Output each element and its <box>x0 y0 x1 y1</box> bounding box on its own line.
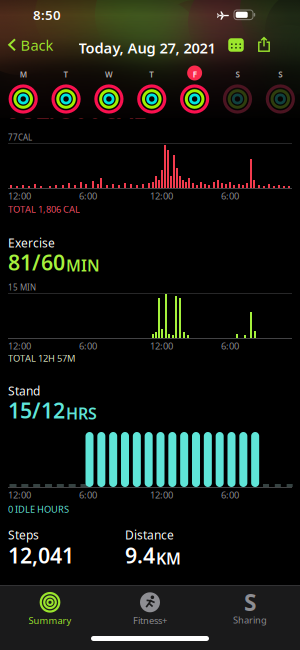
staticText: Back <box>20 35 53 55</box>
staticText: Stand <box>8 383 40 399</box>
staticText: TOTAL 12H 57M <box>8 352 75 364</box>
staticText: S <box>235 69 239 80</box>
staticText: 6:00 <box>79 340 97 352</box>
button[interactable]: Calendar <box>224 34 248 56</box>
staticText: 6:00 <box>79 190 97 202</box>
staticText: MIN <box>66 255 100 276</box>
staticText: 77CAL <box>8 132 32 143</box>
staticText: Sharing <box>233 614 267 626</box>
staticText: S <box>278 69 282 80</box>
staticText: 0 IDLE HOURS <box>8 503 69 515</box>
staticText: F <box>193 69 197 80</box>
staticText: 9.4 <box>125 541 155 569</box>
staticText: Distance <box>125 527 174 543</box>
staticText: Today, Aug 27, 2021 <box>78 38 215 57</box>
staticText: 12:00 <box>150 489 173 501</box>
button[interactable]: Day W <box>88 64 130 118</box>
button[interactable]: Share <box>254 33 274 56</box>
staticText: 12,041 <box>8 541 74 569</box>
staticText: 15/12 <box>8 396 65 424</box>
staticText: TOTAL 1,806 CAL <box>8 203 80 215</box>
button[interactable]: Day F <box>174 64 216 118</box>
button[interactable]: Fitness+ <box>100 590 200 628</box>
button[interactable]: Back <box>0 33 53 57</box>
staticText: 15 MIN <box>8 282 36 293</box>
button[interactable]: Day S <box>216 64 258 118</box>
staticText: 8:50 <box>33 6 61 24</box>
staticText: S <box>244 587 256 617</box>
button[interactable]: Day T <box>45 64 87 118</box>
staticText: 6:00 <box>221 340 239 352</box>
staticText: T <box>64 69 69 80</box>
button[interactable]: S <box>200 590 300 628</box>
staticText: Fitness+ <box>133 614 167 627</box>
button[interactable]: Day S <box>259 64 300 118</box>
staticText: W <box>105 69 113 80</box>
staticText: 81/60 <box>8 248 65 276</box>
staticText: KM <box>156 548 181 569</box>
staticText: 12:00 <box>150 190 173 202</box>
button[interactable]: Day M <box>2 64 44 118</box>
staticText: HRS <box>66 403 97 424</box>
button[interactable]: Day T <box>131 64 173 118</box>
staticText: 6:00 <box>221 190 239 202</box>
staticText: 12:00 <box>8 190 31 202</box>
staticText: T <box>149 69 154 80</box>
staticText: 6:00 <box>221 489 239 501</box>
button[interactable]: Summary <box>0 590 100 628</box>
staticText: 932/300CAL <box>8 93 146 125</box>
staticText: 12:00 <box>150 340 173 352</box>
staticText: Summary <box>28 614 71 627</box>
staticText: 6:00 <box>79 489 97 501</box>
staticText: Exercise <box>8 235 55 251</box>
staticText: 12:00 <box>8 489 31 501</box>
staticText: M <box>20 69 27 80</box>
staticText: Steps <box>8 527 39 543</box>
staticText: 12:00 <box>8 340 31 352</box>
